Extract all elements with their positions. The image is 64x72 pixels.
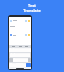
button[interactable]: Enter [26,63,31,67]
staticText: Text [28,3,36,8]
staticText: Translate [23,8,41,13]
